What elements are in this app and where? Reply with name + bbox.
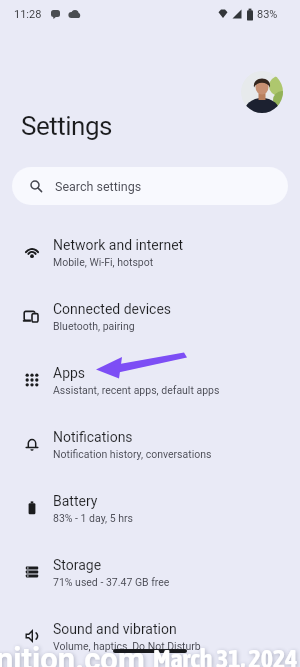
staticText: Settings [21, 111, 112, 141]
staticText: nition.com [0, 641, 145, 667]
button[interactable]: Notifications [0, 412, 300, 476]
button[interactable]: Connected devices [0, 284, 300, 348]
button[interactable]: Storage [0, 540, 300, 604]
staticText: 83% [257, 8, 278, 21]
staticText: March 31, 2024 [153, 644, 298, 667]
staticText: Mobile, Wi-Fi, hotspot [53, 256, 154, 268]
staticText: Network and internet [53, 237, 184, 253]
staticText: Bluetooth, pairing [53, 320, 135, 332]
button[interactable]: Network and internet [0, 220, 300, 284]
button[interactable]: Apps [0, 348, 300, 412]
staticText: Search settings [55, 179, 142, 194]
staticText: 71% used - 37.47 GB free [53, 576, 170, 588]
button[interactable]: Battery [0, 476, 300, 540]
button[interactable]: Sound and vibration [0, 604, 300, 667]
staticText: Assistant, recent apps, default apps [53, 384, 220, 396]
staticText: Battery [53, 493, 98, 509]
staticText: Notification history, conversations [53, 448, 212, 460]
staticText: Sound and vibration [53, 621, 177, 637]
staticText: Notifications [53, 429, 133, 445]
staticText: Apps [53, 365, 86, 381]
staticText: Volume, haptics, Do Not Disturb [53, 640, 201, 652]
button[interactable] [241, 71, 283, 113]
staticText: 11:28 [14, 8, 42, 21]
staticText: Connected devices [53, 301, 172, 317]
staticText: Storage [53, 557, 102, 573]
staticText: 83% - 1 day, 5 hrs [53, 512, 134, 524]
button[interactable]: Search settings [12, 167, 288, 205]
